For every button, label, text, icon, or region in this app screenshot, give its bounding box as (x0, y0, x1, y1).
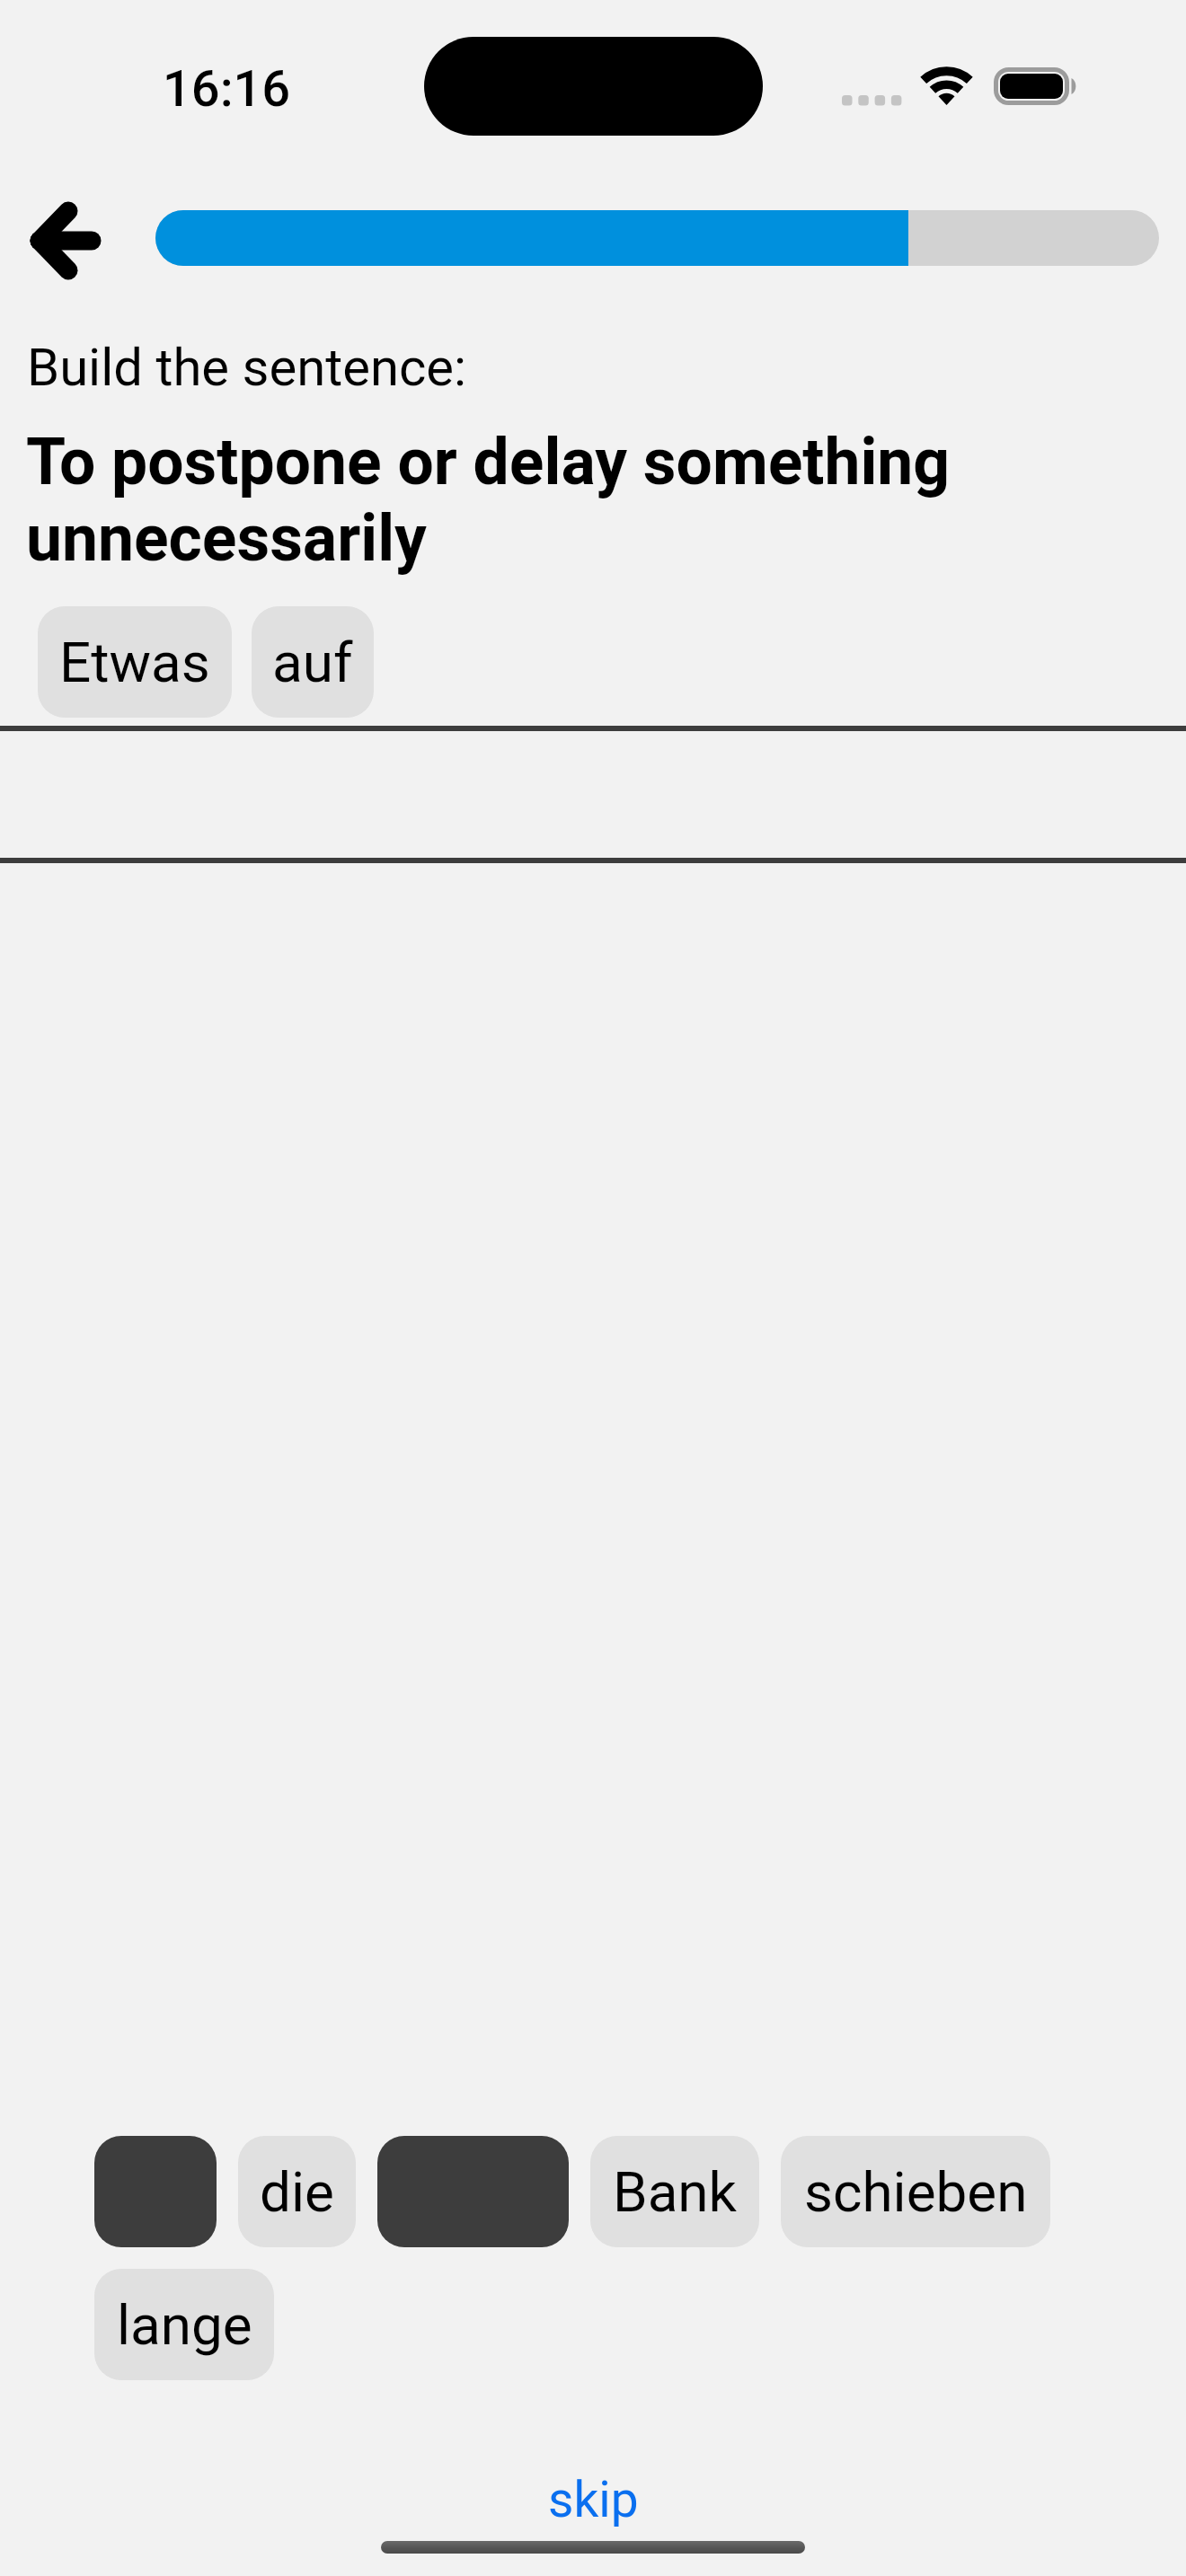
button[interactable]: skip (494, 2457, 693, 2543)
button[interactable]: Back (9, 180, 122, 302)
staticText: lange (117, 2292, 252, 2358)
staticText: To postpone or delay something unnecessa… (26, 425, 1041, 576)
button[interactable]: auf (252, 606, 374, 718)
button[interactable]: Used word auf (94, 2136, 217, 2247)
staticText: auf (272, 630, 353, 695)
staticText: schieben (804, 2159, 1028, 2225)
button[interactable]: Used word Etwas (377, 2136, 569, 2247)
staticText: Build the sentence: (27, 337, 467, 398)
button[interactable]: Etwas (38, 606, 232, 718)
button[interactable]: schieben (781, 2136, 1050, 2247)
staticText: Bank (613, 2159, 738, 2225)
button[interactable]: die (238, 2136, 356, 2247)
staticText: 16:16 (163, 59, 291, 119)
staticText: skip (548, 2471, 639, 2528)
staticText: die (260, 2159, 334, 2225)
button[interactable]: Bank (590, 2136, 759, 2247)
button[interactable]: lange (94, 2269, 274, 2380)
staticText: Etwas (59, 630, 210, 695)
